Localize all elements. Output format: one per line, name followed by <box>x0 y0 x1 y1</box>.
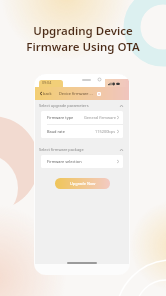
staticText: 09:04 <box>42 80 52 85</box>
staticText: General firmware <box>84 115 116 120</box>
staticText: 115200bps <box>95 129 116 134</box>
button[interactable]: Upgrade Now <box>55 178 110 189</box>
staticText: Upgrade Now <box>70 181 96 186</box>
staticText: Select upgrade parameters <box>39 103 89 108</box>
button[interactable]: Firmware type <box>47 111 119 124</box>
staticText: Device firmware ... <box>59 91 93 96</box>
staticText: Firmware selection <box>47 159 82 164</box>
staticText: Baud rate <box>47 129 65 134</box>
staticText: back <box>43 91 52 96</box>
button[interactable]: Select upgrade parameters <box>39 100 123 111</box>
button[interactable]: Select firmware package <box>39 144 123 155</box>
button[interactable]: Firmware selection <box>47 155 119 168</box>
staticText: Upgrading Device Firmware Using OTA <box>0 23 166 55</box>
button[interactable]: back <box>40 91 52 96</box>
staticText: Select firmware package <box>39 147 84 152</box>
staticText: Firmware type <box>47 115 74 120</box>
button[interactable]: Scan code <box>96 91 102 97</box>
button[interactable]: 09:04 <box>39 80 63 87</box>
button[interactable]: Baud rate <box>47 125 119 138</box>
